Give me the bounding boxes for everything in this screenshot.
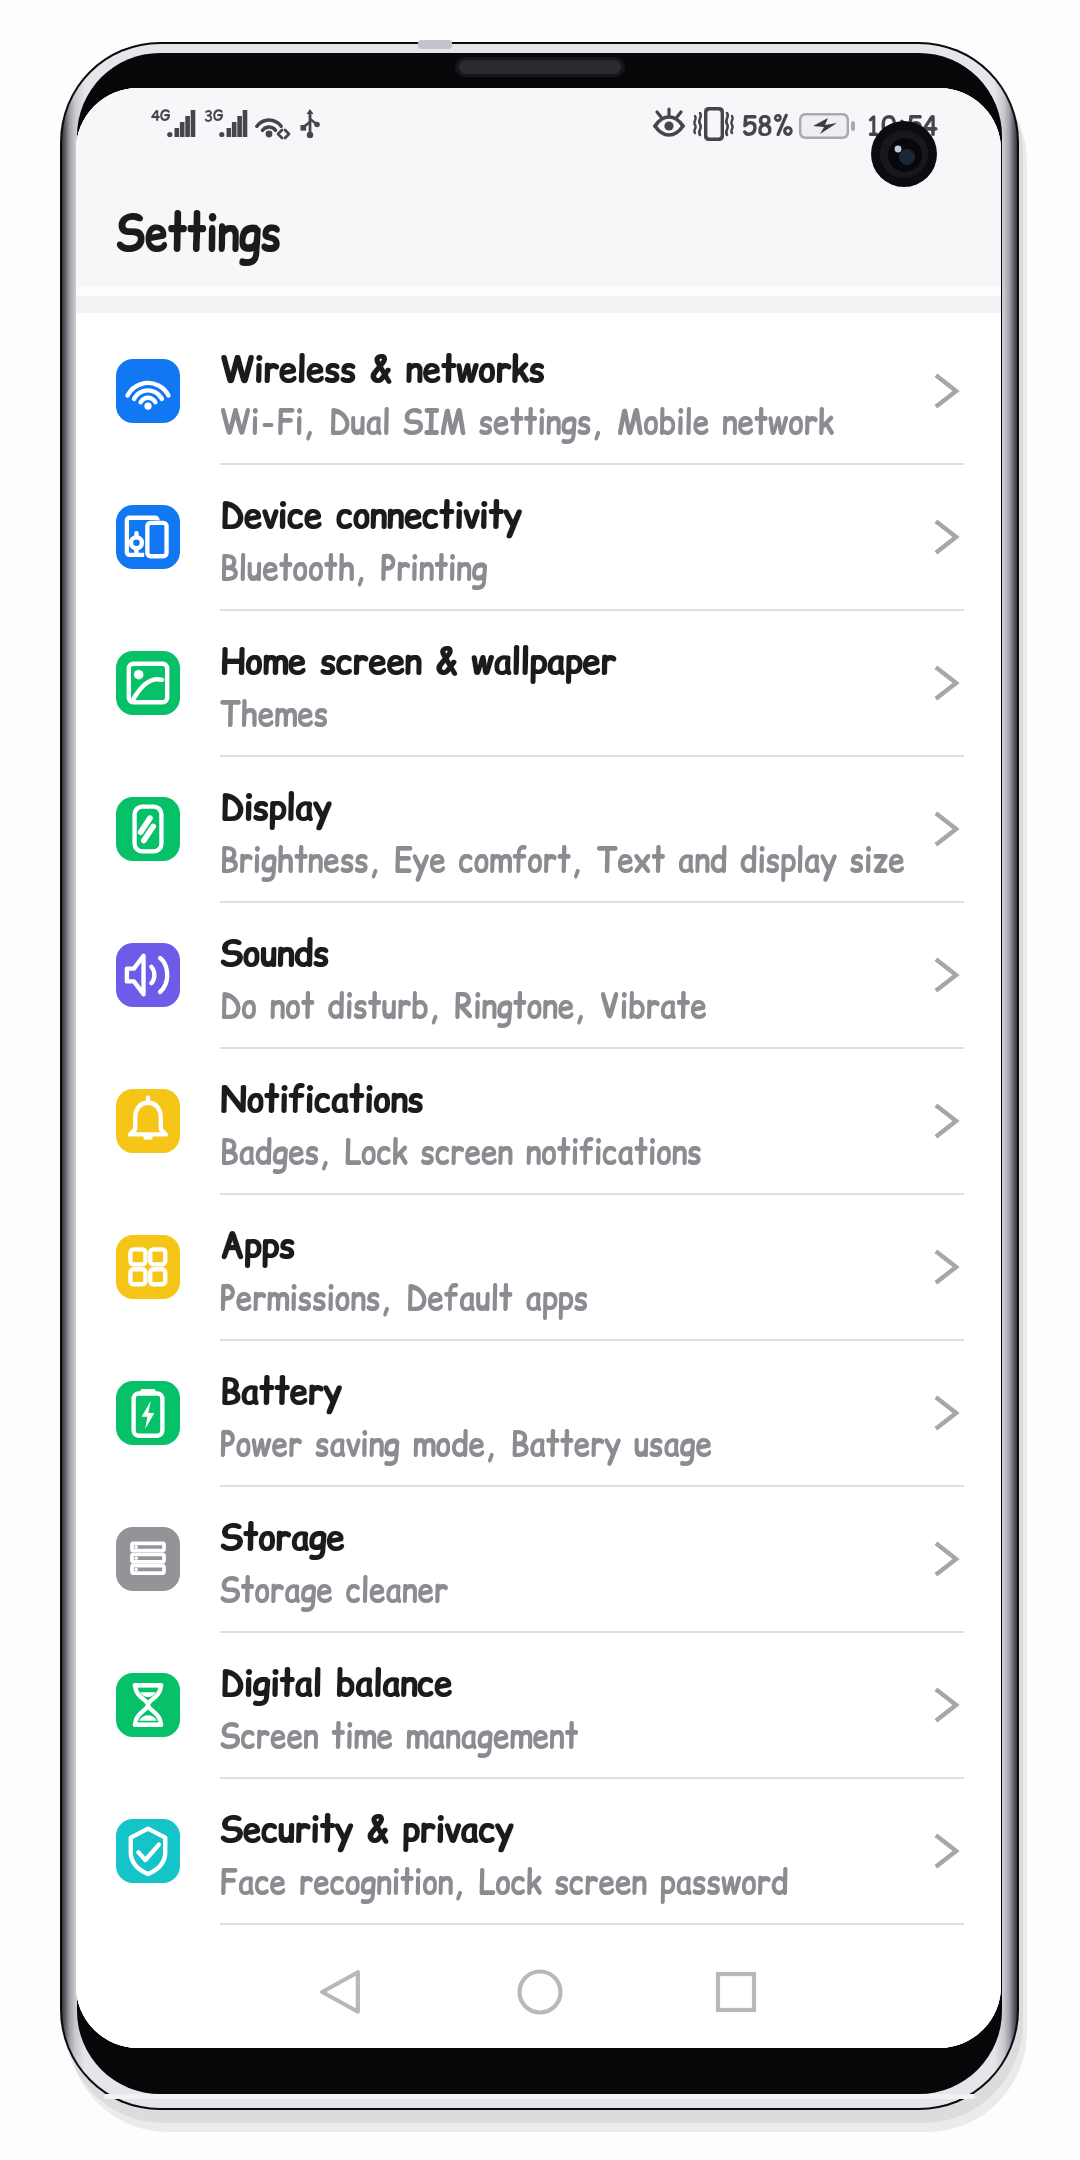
- staticText: Battery: [220, 1365, 341, 1417]
- staticText: Wireless & networks: [220, 343, 545, 395]
- staticText: Bluetooth, Printing: [220, 544, 488, 591]
- staticText: Security & privacy: [221, 1803, 514, 1855]
- button[interactable]: Back: [280, 1942, 400, 2042]
- button[interactable]: Home: [480, 1942, 600, 2042]
- staticText: Digital balance: [220, 1657, 452, 1709]
- staticText: Settings: [117, 196, 281, 269]
- staticText: 10:54: [866, 108, 938, 144]
- staticText: Apps: [220, 1219, 295, 1271]
- staticText: Notifications: [220, 1073, 423, 1125]
- staticText: Home screen & wallpaper: [221, 635, 617, 687]
- staticText: Security & privacy: [220, 1803, 513, 1855]
- staticText: Display: [221, 781, 333, 833]
- staticText: Themes: [220, 690, 329, 737]
- button[interactable]: Notifications: [76, 1049, 1001, 1195]
- staticText: Brightness, Eye comfort, Text and displa…: [220, 836, 906, 883]
- button[interactable]: Home screen & wallpaper: [76, 611, 1001, 757]
- button[interactable]: Recent apps: [676, 1942, 796, 2042]
- button[interactable]: Display: [76, 757, 1001, 903]
- staticText: Sounds: [220, 927, 329, 979]
- staticText: 3G: [204, 104, 223, 126]
- staticText: Do not disturb, Ringtone, Vibrate: [220, 982, 707, 1029]
- staticText: Battery: [221, 1365, 342, 1417]
- button[interactable]: Wireless & networks: [76, 319, 1001, 465]
- button[interactable]: Digital balance: [76, 1633, 1001, 1779]
- staticText: Settings: [116, 196, 280, 269]
- staticText: Face recognition, Lock screen password: [220, 1858, 789, 1905]
- button[interactable]: Sounds: [76, 903, 1001, 1049]
- button[interactable]: Battery: [76, 1341, 1001, 1487]
- button[interactable]: Security & privacy: [76, 1779, 1001, 1925]
- staticText: Sounds: [221, 927, 330, 979]
- staticText: Home screen & wallpaper: [220, 635, 616, 687]
- staticText: Digital balance: [221, 1657, 453, 1709]
- staticText: Device connectivity: [220, 489, 522, 541]
- button[interactable]: Device connectivity: [76, 465, 1001, 611]
- staticText: Notifications: [221, 1073, 424, 1125]
- staticText: Power saving mode, Battery usage: [220, 1420, 712, 1467]
- staticText: Storage cleaner: [220, 1566, 449, 1613]
- staticText: Storage: [220, 1511, 345, 1563]
- staticText: Wireless & networks: [221, 343, 546, 395]
- staticText: 58%: [742, 108, 794, 144]
- staticText: Badges, Lock screen notifications: [220, 1128, 702, 1175]
- staticText: Permissions, Default apps: [220, 1274, 589, 1321]
- staticText: Storage: [221, 1511, 346, 1563]
- staticText: Apps: [221, 1219, 296, 1271]
- staticText: Wi-Fi, Dual SIM settings, Mobile network: [220, 398, 834, 445]
- staticText: Screen time management: [220, 1712, 578, 1759]
- staticText: 4G: [151, 104, 170, 126]
- staticText: Display: [220, 781, 332, 833]
- staticText: Device connectivity: [221, 489, 523, 541]
- button[interactable]: Apps: [76, 1195, 1001, 1341]
- button[interactable]: Storage: [76, 1487, 1001, 1633]
